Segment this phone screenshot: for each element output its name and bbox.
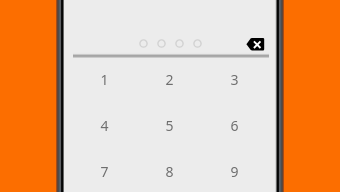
button[interactable]: 2	[137, 56, 202, 102]
staticText: 1	[100, 70, 109, 89]
staticText: 6	[230, 116, 239, 135]
button[interactable]: 4	[71, 102, 137, 148]
staticText: 7	[100, 162, 109, 181]
button[interactable]: 6	[202, 102, 267, 148]
button[interactable]: 8	[137, 148, 202, 192]
staticText: 4	[100, 116, 109, 135]
button[interactable]: 3	[202, 56, 267, 102]
button[interactable]: 7	[71, 148, 137, 192]
button[interactable]: 5	[137, 102, 202, 148]
staticText: 2	[165, 70, 174, 89]
button[interactable]: Delete last digit	[242, 34, 266, 54]
staticText: 5	[165, 116, 174, 135]
staticText: 3	[230, 70, 239, 89]
staticText: 9	[230, 162, 239, 181]
button[interactable]: 1	[71, 56, 137, 102]
button[interactable]: 9	[202, 148, 267, 192]
staticText: 8	[165, 162, 174, 181]
